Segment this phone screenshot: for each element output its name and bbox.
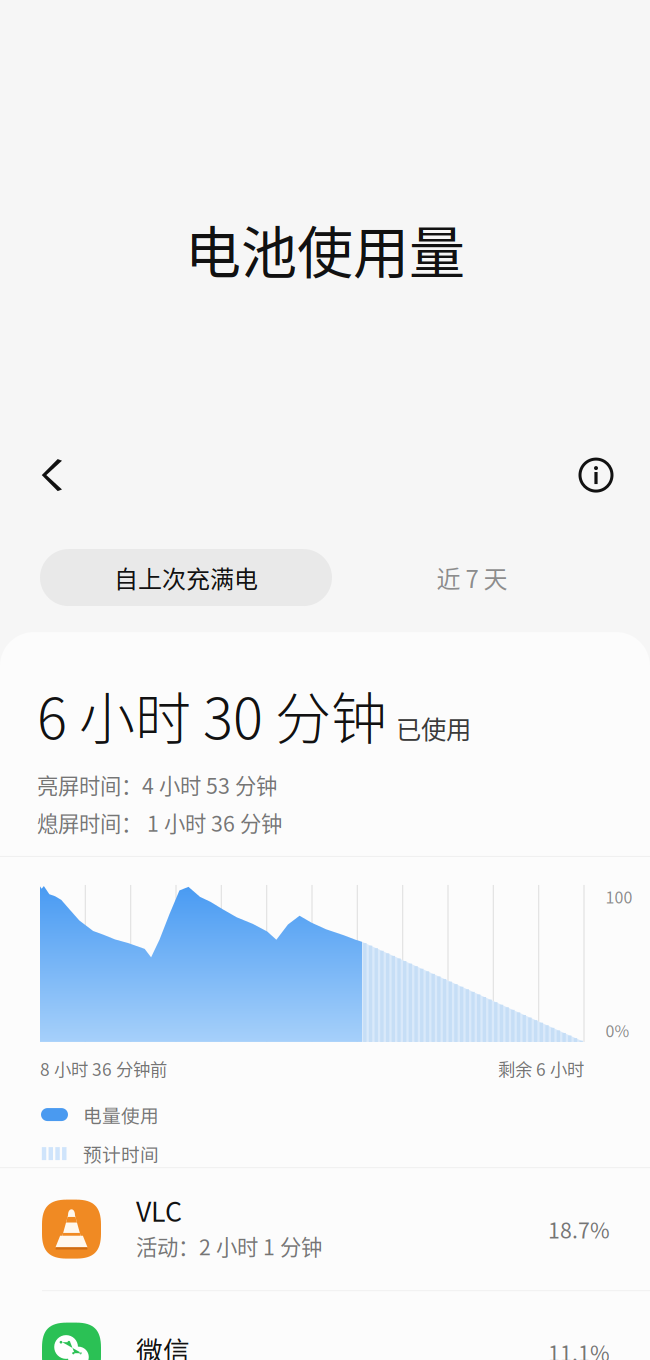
staticText: 亮屏时间：4 小时 53 分钟 xyxy=(37,769,277,800)
staticText: 已使用 xyxy=(396,710,471,746)
staticText: 18.7% xyxy=(548,1214,610,1245)
staticText: 剩余 6 小时 xyxy=(498,1056,584,1081)
button[interactable]: VLC xyxy=(0,1168,650,1290)
staticText: 0% xyxy=(605,1019,629,1042)
staticText: 熄屏时间： 1 小时 36 分钟 xyxy=(37,807,282,838)
staticText: 6 小时 30 分钟 xyxy=(37,674,387,755)
button[interactable]: Back xyxy=(22,444,84,506)
staticText: 100 xyxy=(605,885,632,908)
button[interactable]: 微信 xyxy=(0,1291,650,1360)
staticText: 近 7 天 xyxy=(436,560,507,595)
staticText: 电池使用量 xyxy=(185,208,465,289)
staticText: 电量使用 xyxy=(83,1101,159,1128)
staticText: 11.1% xyxy=(548,1337,610,1360)
button[interactable]: Information xyxy=(565,444,627,506)
staticText: VLC xyxy=(136,1191,182,1229)
button[interactable]: 自上次充满电 xyxy=(40,549,332,606)
staticText: 微信 xyxy=(136,1330,190,1360)
staticText: 自上次充满电 xyxy=(114,560,258,595)
staticText: 预计时间 xyxy=(83,1140,159,1167)
staticText: 8 小时 36 分钟前 xyxy=(40,1056,167,1081)
staticText: 活动：2 小时 1 分钟 xyxy=(136,1230,322,1261)
button[interactable]: 近 7 天 xyxy=(332,549,612,606)
